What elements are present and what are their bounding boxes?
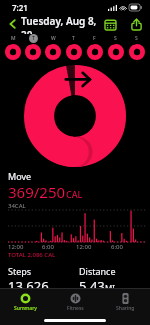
staticText: S <box>114 35 117 42</box>
staticText: Move <box>8 170 32 182</box>
button[interactable]: Calendar <box>101 15 119 33</box>
staticText: MI <box>105 283 115 294</box>
staticText: Tuesday, Aug 8, 20… <box>21 14 101 34</box>
staticText: 5.43 <box>79 277 105 295</box>
button[interactable]: Distance <box>79 265 150 295</box>
staticText: Flights Climbed <box>8 301 81 315</box>
button[interactable]: T <box>23 34 43 60</box>
staticText: 369/250 <box>8 182 66 202</box>
staticText: 7:21 <box>12 2 28 13</box>
staticText: F <box>93 35 96 42</box>
button[interactable]: T <box>63 34 84 60</box>
staticText: M <box>11 35 16 42</box>
staticText: 34CAL <box>8 202 26 210</box>
button[interactable]: Share <box>127 15 145 33</box>
button[interactable]: Back <box>5 16 21 32</box>
staticText: T <box>72 35 75 42</box>
button[interactable]: Move <box>8 170 150 202</box>
button[interactable]: F <box>84 34 105 60</box>
staticText: T <box>32 35 35 42</box>
staticText: S <box>135 35 138 42</box>
staticText: Distance <box>79 265 116 277</box>
button[interactable]: Sharing <box>100 289 150 315</box>
staticText: TOTAL 2,086 CAL <box>8 251 56 259</box>
button[interactable]: Summary <box>0 289 50 315</box>
staticText: Sharing <box>116 305 135 312</box>
staticText: Summary <box>14 305 37 312</box>
button[interactable]: S <box>105 34 126 60</box>
button[interactable]: W <box>43 34 63 60</box>
staticText: 6:00 <box>42 243 54 251</box>
button[interactable]: Fitness <box>50 289 100 315</box>
staticText: 12:00 <box>76 243 92 251</box>
staticText: 13,626 <box>8 277 49 295</box>
button[interactable]: Steps <box>8 265 79 295</box>
button[interactable]: Tuesday, Aug 8, 20… <box>21 14 101 34</box>
staticText: CAL <box>66 188 83 200</box>
staticText: 12:00 <box>8 243 24 251</box>
button[interactable]: M <box>3 34 23 60</box>
staticText: 6:00 <box>111 243 123 251</box>
staticText: W <box>51 35 56 42</box>
button[interactable]: S <box>126 34 147 60</box>
staticText: Steps <box>8 265 32 277</box>
staticText: Fitness <box>67 305 84 312</box>
